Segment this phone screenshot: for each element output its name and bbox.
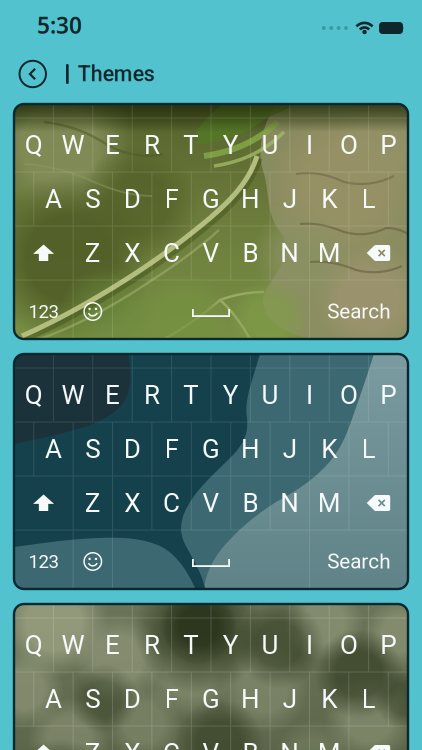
staticText: M bbox=[318, 488, 341, 518]
staticText: N bbox=[280, 488, 299, 518]
staticText: C bbox=[163, 738, 180, 750]
staticText: H bbox=[241, 184, 260, 214]
staticText: B bbox=[242, 738, 258, 750]
staticText: H bbox=[241, 434, 260, 464]
staticText: T bbox=[183, 380, 199, 410]
staticText: A bbox=[45, 434, 62, 464]
staticText: 123 bbox=[28, 301, 58, 322]
staticText: M bbox=[318, 738, 341, 750]
staticText: P bbox=[380, 380, 396, 410]
staticText: Y bbox=[223, 630, 239, 660]
staticText: T bbox=[183, 130, 199, 160]
staticText: Q bbox=[25, 630, 43, 660]
staticText: D bbox=[124, 434, 141, 464]
staticText: O bbox=[340, 630, 358, 660]
staticText: B bbox=[242, 238, 258, 268]
staticText: 5:30 bbox=[37, 10, 82, 40]
staticText: J bbox=[283, 184, 297, 214]
staticText: O bbox=[340, 380, 358, 410]
staticText: E bbox=[105, 380, 120, 410]
staticText: T bbox=[183, 630, 199, 660]
staticText: G bbox=[202, 684, 220, 714]
staticText: L bbox=[362, 684, 376, 714]
staticText: K bbox=[321, 684, 337, 714]
staticText: Y bbox=[223, 130, 239, 160]
staticText: C bbox=[163, 488, 180, 518]
button[interactable]: Back bbox=[19, 61, 46, 87]
button[interactable]: Green terrain keyboard theme bbox=[14, 104, 408, 339]
staticText: M bbox=[318, 238, 341, 268]
staticText: I bbox=[306, 630, 313, 660]
staticText: Q bbox=[25, 380, 43, 410]
staticText: U bbox=[262, 380, 279, 410]
staticText: F bbox=[165, 184, 179, 214]
staticText: G bbox=[202, 184, 220, 214]
staticText: K bbox=[321, 184, 337, 214]
staticText: J bbox=[283, 434, 297, 464]
staticText: X bbox=[124, 738, 140, 750]
staticText: 123 bbox=[28, 551, 58, 572]
staticText: J bbox=[283, 684, 297, 714]
staticText: V bbox=[202, 238, 219, 268]
staticText: L bbox=[362, 434, 376, 464]
staticText: P bbox=[380, 630, 396, 660]
staticText: C bbox=[163, 238, 180, 268]
staticText: V bbox=[202, 488, 219, 518]
staticText: A bbox=[45, 684, 62, 714]
staticText: N bbox=[280, 738, 299, 750]
staticText: F bbox=[165, 684, 179, 714]
staticText: Q bbox=[25, 130, 43, 160]
staticText: I bbox=[306, 130, 313, 160]
staticText: L bbox=[362, 184, 376, 214]
staticText: S bbox=[85, 434, 100, 464]
staticText: H bbox=[241, 684, 260, 714]
staticText: X bbox=[124, 238, 140, 268]
staticText: E bbox=[105, 630, 120, 660]
staticText: W bbox=[62, 130, 85, 160]
staticText: E bbox=[105, 130, 120, 160]
staticText: N bbox=[280, 238, 299, 268]
staticText: Z bbox=[85, 238, 101, 268]
staticText: R bbox=[144, 380, 160, 410]
staticText: S bbox=[85, 684, 100, 714]
staticText: W bbox=[62, 630, 85, 660]
staticText: Y bbox=[223, 380, 239, 410]
staticText: S bbox=[85, 184, 100, 214]
staticText: W bbox=[62, 380, 85, 410]
staticText: K bbox=[321, 434, 337, 464]
staticText: F bbox=[165, 434, 179, 464]
staticText: I bbox=[306, 380, 313, 410]
staticText: V bbox=[202, 738, 219, 750]
staticText: U bbox=[262, 130, 279, 160]
staticText: X bbox=[124, 488, 140, 518]
staticText: Search bbox=[327, 299, 390, 324]
staticText: A bbox=[45, 184, 62, 214]
staticText: Z bbox=[85, 488, 101, 518]
button[interactable]: Teal waves keyboard theme bbox=[14, 354, 408, 589]
staticText: R bbox=[144, 630, 160, 660]
staticText: P bbox=[380, 130, 396, 160]
staticText: U bbox=[262, 630, 279, 660]
staticText: Search bbox=[327, 549, 390, 574]
staticText: O bbox=[340, 130, 358, 160]
staticText: G bbox=[202, 434, 220, 464]
staticText: D bbox=[124, 184, 141, 214]
staticText: D bbox=[124, 684, 141, 714]
staticText: R bbox=[144, 130, 160, 160]
staticText: Themes bbox=[78, 61, 155, 86]
staticText: B bbox=[242, 488, 258, 518]
button[interactable]: Dark smoke keyboard theme bbox=[14, 604, 408, 750]
staticText: Z bbox=[85, 738, 101, 750]
